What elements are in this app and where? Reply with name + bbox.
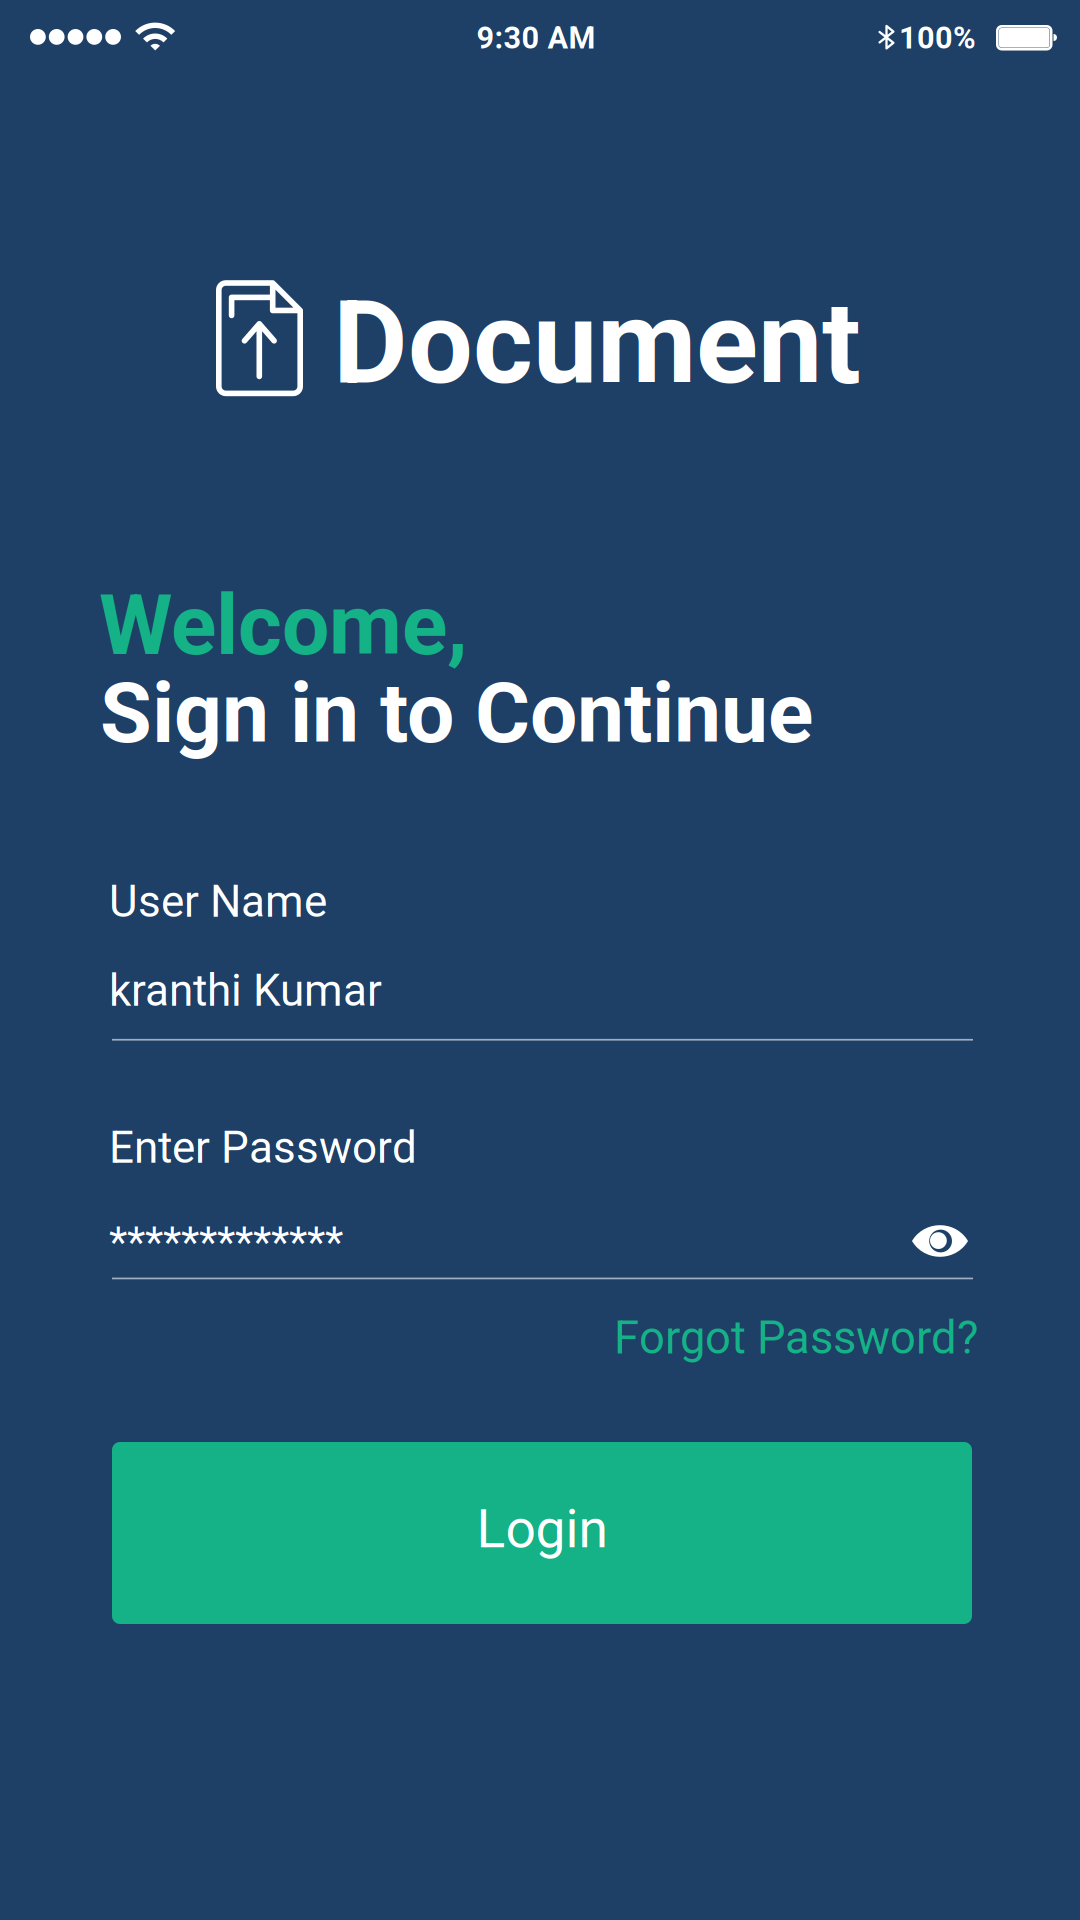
staticText: Enter Password bbox=[109, 1122, 417, 1174]
staticText: Login bbox=[476, 1498, 607, 1560]
staticText: Welcome, bbox=[99, 576, 468, 674]
staticText: Forgot Password? bbox=[614, 1311, 978, 1364]
staticText: ************* bbox=[109, 1217, 343, 1267]
staticText: 100% bbox=[899, 20, 976, 56]
button[interactable]: Login bbox=[112, 1442, 972, 1624]
staticText: 9:30 AM bbox=[476, 20, 595, 56]
staticText: Sign in to Continue bbox=[100, 664, 813, 762]
button[interactable]: Forgot Password? bbox=[558, 1309, 978, 1367]
button[interactable]: Show password bbox=[902, 1210, 978, 1272]
staticText: kranthi Kumar bbox=[109, 965, 382, 1017]
staticText: User Name bbox=[109, 876, 327, 928]
staticText: Document bbox=[333, 276, 861, 410]
